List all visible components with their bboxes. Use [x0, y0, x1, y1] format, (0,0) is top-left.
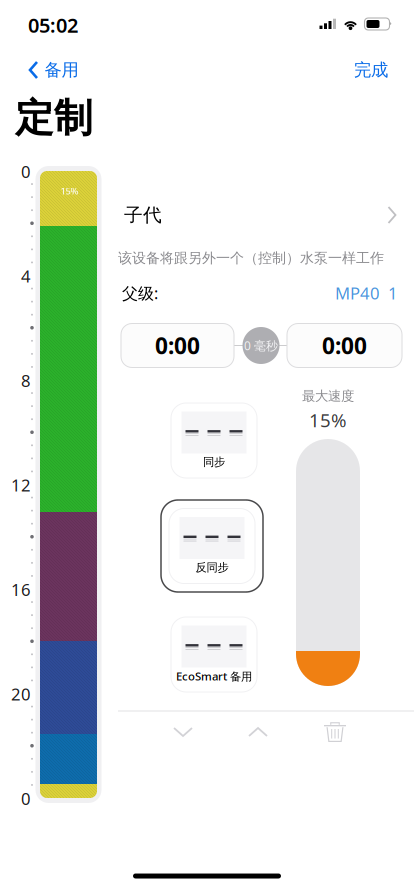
staticText: 0:00: [322, 330, 367, 361]
button[interactable]: 子代: [124, 189, 398, 241]
staticText: 备用: [44, 59, 78, 81]
button[interactable]: 0:00: [287, 323, 402, 367]
staticText: 12: [11, 474, 31, 496]
staticText: 20: [11, 683, 31, 705]
staticText: 15%: [60, 185, 78, 197]
staticText: 0 毫秒: [244, 337, 278, 354]
staticText: 4: [21, 265, 31, 287]
button[interactable]: Delete: [309, 710, 361, 754]
staticText: 05:02: [28, 12, 78, 38]
staticText: 0: [21, 160, 31, 183]
button[interactable]: EcoSmart 备用: [163, 608, 265, 700]
button[interactable]: 完成: [336, 48, 406, 92]
staticText: 最大速度: [302, 388, 354, 404]
staticText: 8: [21, 369, 31, 392]
button[interactable]: Move down: [157, 710, 209, 754]
button[interactable]: 备用: [9, 48, 96, 92]
staticText: 0:00: [155, 330, 200, 361]
button[interactable]: 同步: [163, 394, 265, 486]
staticText: 父级:: [122, 282, 158, 304]
staticText: 反同步: [195, 560, 228, 575]
staticText: 0: [21, 787, 31, 810]
staticText: MP40 1: [335, 282, 398, 304]
staticText: 完成: [354, 59, 388, 81]
staticText: 该设备将跟另外一个（控制）水泵一样工作: [118, 249, 384, 267]
staticText: 15%: [309, 407, 347, 433]
button[interactable]: 反同步: [161, 500, 263, 592]
staticText: 定制: [15, 94, 93, 142]
button[interactable]: 0 毫秒: [237, 327, 285, 364]
staticText: 同步: [203, 455, 225, 469]
button[interactable]: Move up: [232, 710, 284, 754]
staticText: 16: [11, 578, 31, 601]
button[interactable]: 0:00: [121, 323, 234, 367]
staticText: 子代: [124, 203, 162, 227]
staticText: EcoSmart 备用: [176, 668, 252, 684]
